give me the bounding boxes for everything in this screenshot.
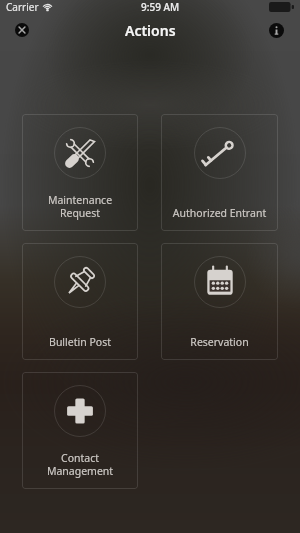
- staticText: Reservation: [161, 335, 278, 349]
- staticText: Carrier: [6, 0, 39, 14]
- button[interactable]: Maintenance Request: [22, 114, 138, 231]
- button[interactable]: Bulletin Post: [22, 243, 138, 360]
- staticText: Contact Management: [22, 451, 138, 478]
- button[interactable]: Close: [15, 23, 29, 37]
- staticText: 9:59 AM: [141, 0, 180, 14]
- staticText: Authorized Entrant: [161, 206, 278, 220]
- staticText: Bulletin Post: [22, 335, 138, 349]
- button[interactable]: Info: [269, 23, 284, 38]
- button[interactable]: Authorized Entrant: [161, 114, 278, 231]
- staticText: Maintenance Request: [22, 193, 138, 220]
- staticText: Actions: [125, 21, 176, 40]
- button[interactable]: Contact Management: [22, 372, 138, 489]
- button[interactable]: Reservation: [161, 243, 278, 360]
